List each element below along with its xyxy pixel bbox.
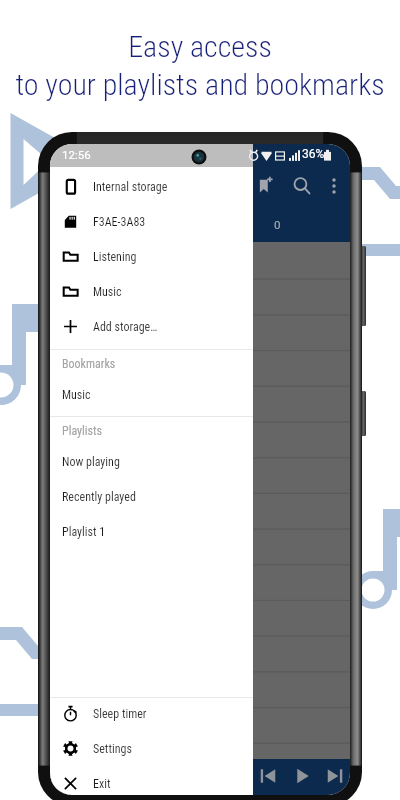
- button[interactable]: Power: [361, 391, 366, 436]
- staticText: Exit: [93, 777, 111, 791]
- button[interactable]: Add bookmark: [255, 175, 277, 197]
- button[interactable]: Internal storage: [50, 169, 253, 204]
- button[interactable]: Music: [50, 377, 253, 412]
- staticText: Listening: [93, 250, 137, 264]
- staticText: 12:56: [62, 148, 91, 161]
- button[interactable]: Now playing: [50, 444, 253, 479]
- button[interactable]: More options: [324, 176, 344, 196]
- staticText: Sleep timer: [93, 707, 147, 721]
- button[interactable]: Add storage…: [50, 309, 253, 344]
- button[interactable]: Music: [50, 274, 253, 309]
- staticText: Music: [62, 388, 91, 402]
- button[interactable]: Exit: [50, 766, 253, 795]
- button[interactable]: Listening: [50, 239, 253, 274]
- staticText: Playlists: [62, 424, 103, 438]
- staticText: F3AE-3A83: [93, 215, 146, 229]
- staticText: Internal storage: [93, 180, 168, 194]
- button[interactable]: Recently played: [50, 479, 253, 514]
- button[interactable]: Previous track: [254, 762, 282, 790]
- staticText: Easy access: [128, 29, 272, 64]
- button[interactable]: Playlist 1: [50, 514, 253, 549]
- staticText: Bookmarks: [62, 357, 116, 371]
- staticText: to your playlists and bookmarks: [15, 67, 385, 102]
- staticText: Music: [93, 285, 122, 299]
- staticText: Add storage…: [93, 320, 158, 334]
- button[interactable]: F3AE-3A83: [50, 204, 253, 239]
- staticText: Settings: [93, 742, 132, 756]
- button[interactable]: Volume: [361, 246, 366, 326]
- staticText: Recently played: [62, 490, 136, 504]
- button[interactable]: Sleep timer: [50, 696, 253, 731]
- staticText: 36%: [302, 147, 325, 161]
- button[interactable]: Next track: [321, 762, 349, 790]
- staticText: Now playing: [62, 455, 120, 469]
- button[interactable]: Play: [288, 762, 316, 790]
- staticText: 0: [274, 218, 281, 231]
- button[interactable]: Search: [291, 175, 313, 197]
- button[interactable]: Settings: [50, 731, 253, 766]
- staticText: Playlist 1: [62, 525, 106, 539]
